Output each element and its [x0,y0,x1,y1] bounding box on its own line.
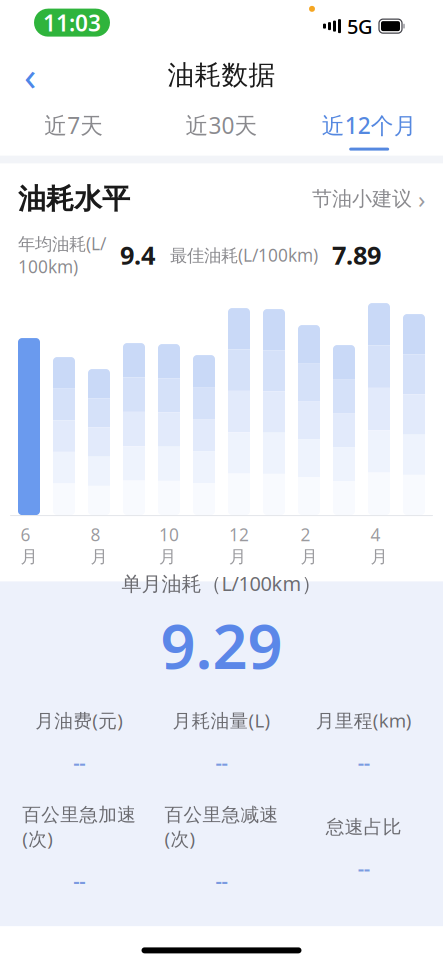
button[interactable]: 节油小建议 [312,183,425,215]
staticText: -- [73,867,85,894]
button[interactable]: 近7天 [0,103,148,156]
staticText: 9.4 [106,238,155,272]
staticText: 近30天 [185,110,257,140]
staticText: 近12个月 [322,110,417,140]
staticText: 7.89 [318,238,381,272]
staticText: 百公里急加速(次) [22,803,136,851]
staticText: 近7天 [44,110,103,140]
staticText: -- [73,749,85,775]
staticText: 查看更多驾驶行为 [140,926,292,949]
staticText: -- [358,855,370,881]
staticText: 怠速占比 [326,816,402,838]
staticText: -- [215,749,227,775]
button[interactable]: 查看更多驾驶行为 [128,915,314,960]
staticText: 百公里急减速(次) [164,803,278,851]
staticText: 单月油耗（L/100km） [121,570,321,596]
staticText: 节油小建议 [312,186,412,211]
button[interactable]: Back [8,53,52,97]
staticText: 油耗数据 [167,59,275,92]
staticText: 月里程(km) [316,708,412,733]
staticText: › [418,183,425,215]
staticText: 6月 [20,523,37,567]
staticText: 4月 [370,523,387,567]
staticText: -- [358,749,370,775]
staticText: 12月 [229,523,249,567]
staticText: › [295,923,302,952]
staticText: 月耗油量(L) [172,708,270,733]
button[interactable]: 近30天 [148,103,295,156]
staticText: -- [215,867,227,894]
staticText: 10月 [159,523,179,567]
staticText: 5G [347,13,373,39]
staticText: 油耗水平 [18,182,130,216]
staticText: 9.29 [160,604,282,686]
staticText: 年均油耗(L/100km) [18,232,106,278]
staticText: 8月 [90,523,107,567]
staticText: ‹ [24,49,36,102]
staticText: 最佳油耗(L/100km) [155,243,318,266]
button[interactable]: 近12个月 [295,103,443,156]
staticText: 11:03 [43,8,101,38]
staticText: 月油费(元) [35,708,123,733]
staticText: 2月 [300,523,317,567]
